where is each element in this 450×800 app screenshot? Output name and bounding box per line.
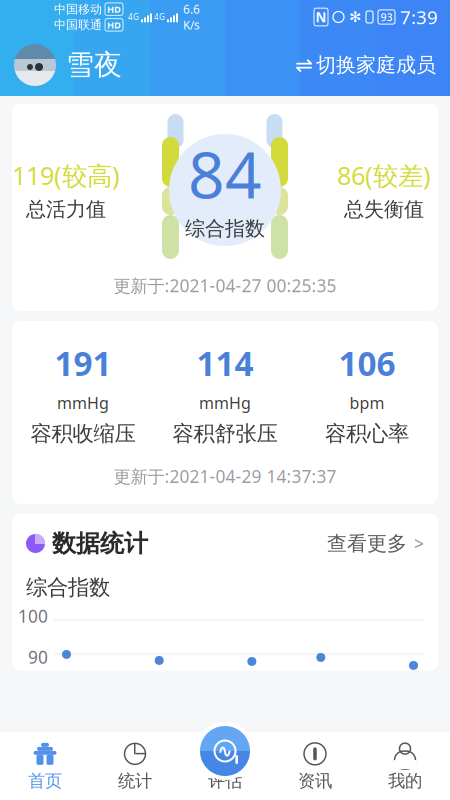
staticText: 我的 (388, 770, 422, 792)
staticText: 7:39 (400, 5, 438, 29)
staticText: HD (107, 3, 121, 15)
staticText: 数据统计 (52, 529, 148, 558)
staticText: 评估 (208, 770, 242, 792)
button[interactable]: 评估 (196, 722, 254, 780)
staticText: 191 (54, 341, 111, 385)
staticText: 资讯 (298, 770, 332, 792)
staticText: ⇌ (295, 53, 313, 77)
button[interactable]: 查看更多 (327, 531, 424, 556)
staticText: 106 (338, 341, 395, 385)
staticText: 更新于:2021-04-29 14:37:37 (113, 465, 336, 488)
staticText: 切换家庭成员 (316, 53, 436, 77)
button[interactable]: 统计 (90, 732, 180, 800)
staticText: 119(较高) (12, 158, 120, 192)
staticText: ∿ (217, 740, 233, 762)
staticText: 4G (154, 12, 165, 22)
staticText: 4G (128, 12, 139, 22)
staticText: bpm (349, 392, 384, 413)
staticText: 容积舒张压 (172, 420, 277, 447)
staticText: 114 (196, 341, 253, 385)
staticText: 86(较差) (337, 158, 431, 192)
staticText: 总活力值 (26, 197, 106, 222)
staticText: N (315, 8, 326, 26)
staticText: 总失衡值 (344, 197, 424, 222)
staticText: 雪夜 (66, 48, 122, 82)
button[interactable]: 我的 (360, 732, 450, 800)
staticText: 综合指数 (185, 216, 265, 241)
staticText: 90 (28, 645, 48, 668)
staticText: 更新于:2021-04-27 00:25:35 (113, 274, 336, 297)
staticText: 查看更多 (327, 531, 407, 556)
staticText: 统计 (118, 770, 152, 792)
staticText: ✻ (349, 9, 361, 25)
staticText: 容积心率 (325, 420, 409, 447)
staticText: > (414, 532, 424, 555)
staticText: 中国联通 (54, 17, 102, 32)
button[interactable]: 首页 (0, 732, 90, 800)
button[interactable]: ⇌ (295, 53, 436, 77)
staticText: 首页 (28, 770, 62, 792)
staticText: K/s (183, 17, 200, 33)
staticText: 6.6 (183, 1, 200, 17)
button[interactable]: 雪夜 (14, 44, 122, 86)
staticText: 100 (18, 604, 48, 627)
staticText: 综合指数 (26, 574, 110, 600)
button[interactable]: 评估 (180, 732, 270, 800)
staticText: 93 (380, 10, 392, 24)
button[interactable]: 资讯 (270, 732, 360, 800)
staticText: HD (107, 19, 121, 31)
staticText: mmHg (57, 392, 109, 413)
staticText: 中国移动 (54, 2, 102, 16)
staticText: 容积收缩压 (30, 420, 135, 447)
staticText: 84 (188, 131, 262, 216)
staticText: mmHg (199, 392, 251, 413)
